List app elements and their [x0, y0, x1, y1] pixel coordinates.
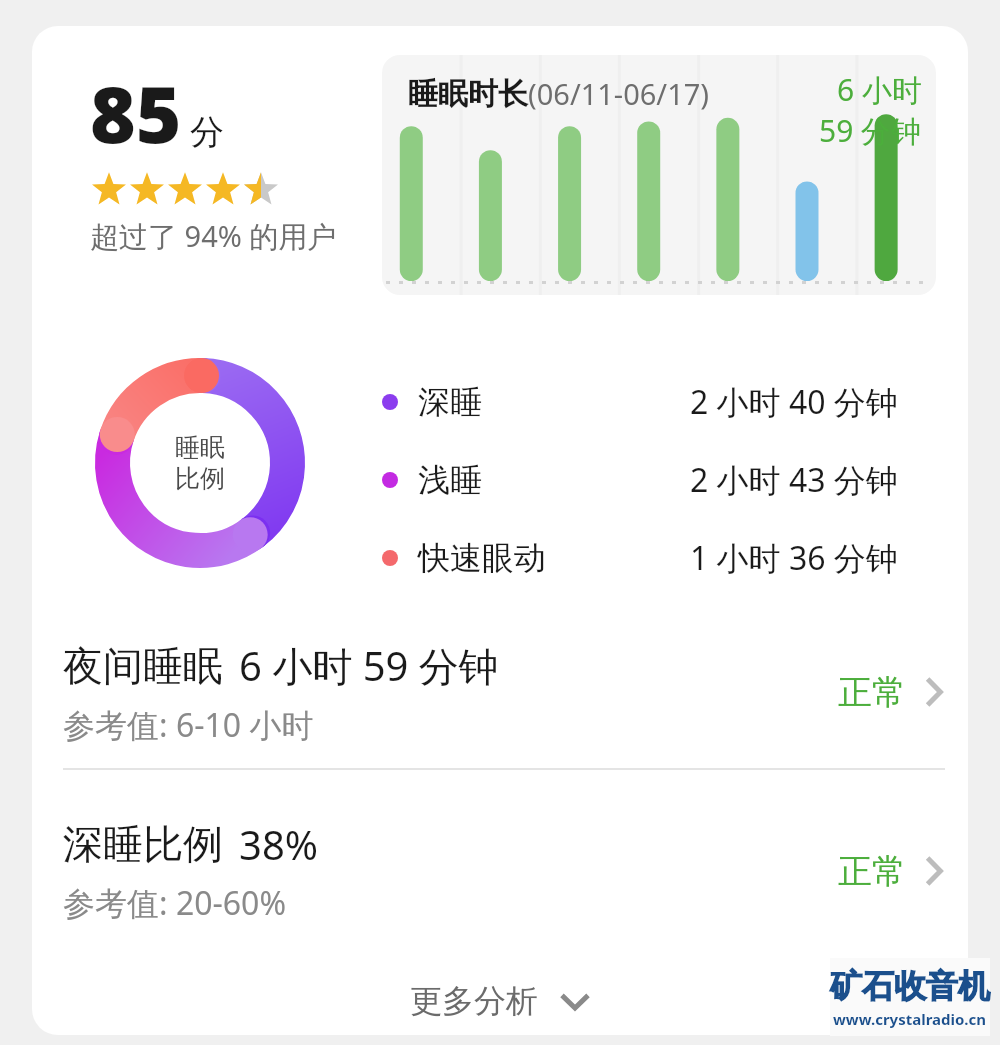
staticText: 睡眠 [175, 432, 225, 463]
staticText: 1 小时 36 分钟 [690, 536, 898, 580]
staticText: 参考值: 20-60% [63, 881, 287, 925]
other: 查看详情 [924, 675, 944, 709]
button[interactable]: 深睡比例 [32, 801, 968, 941]
staticText: 夜间睡眠 [63, 641, 223, 691]
staticText: (06/11-06/17) [528, 74, 710, 113]
staticText: 59 分钟 [819, 110, 922, 151]
staticText: 睡眠时长 [408, 75, 528, 113]
staticText: 深睡 [418, 382, 482, 422]
staticText: 2 小时 43 分钟 [690, 458, 898, 502]
staticText: 快速眼动 [418, 538, 546, 578]
staticText: 浅睡 [418, 460, 482, 500]
button[interactable]: 快速眼动 [382, 536, 922, 580]
staticText: www.crystalradio.cn [833, 1009, 987, 1029]
staticText: 2 小时 40 分钟 [690, 380, 898, 424]
staticText: 6 小时 59 分钟 [239, 638, 499, 693]
staticText: 更多分析 [410, 981, 538, 1021]
staticText: 正常 [838, 850, 906, 893]
staticText: 参考值: 6-10 小时 [63, 703, 314, 747]
staticText: 6 小时 [837, 69, 922, 110]
staticText: 深睡比例 [63, 819, 223, 869]
staticText: 超过了 94% 的用户 [90, 216, 355, 256]
staticText: 38% [239, 817, 318, 871]
button[interactable]: 夜间睡眠 [32, 622, 968, 762]
staticText: 85 [90, 60, 182, 166]
other: 查看详情 [924, 854, 944, 888]
staticText: 比例 [175, 463, 225, 494]
staticText: 正常 [838, 671, 906, 714]
button[interactable]: 更多分析 [32, 971, 968, 1031]
button[interactable]: 浅睡 [382, 458, 922, 502]
button[interactable]: 深睡 [382, 380, 922, 424]
staticText: 分 [190, 111, 224, 154]
staticText: 矿石收音机 [830, 966, 990, 1006]
